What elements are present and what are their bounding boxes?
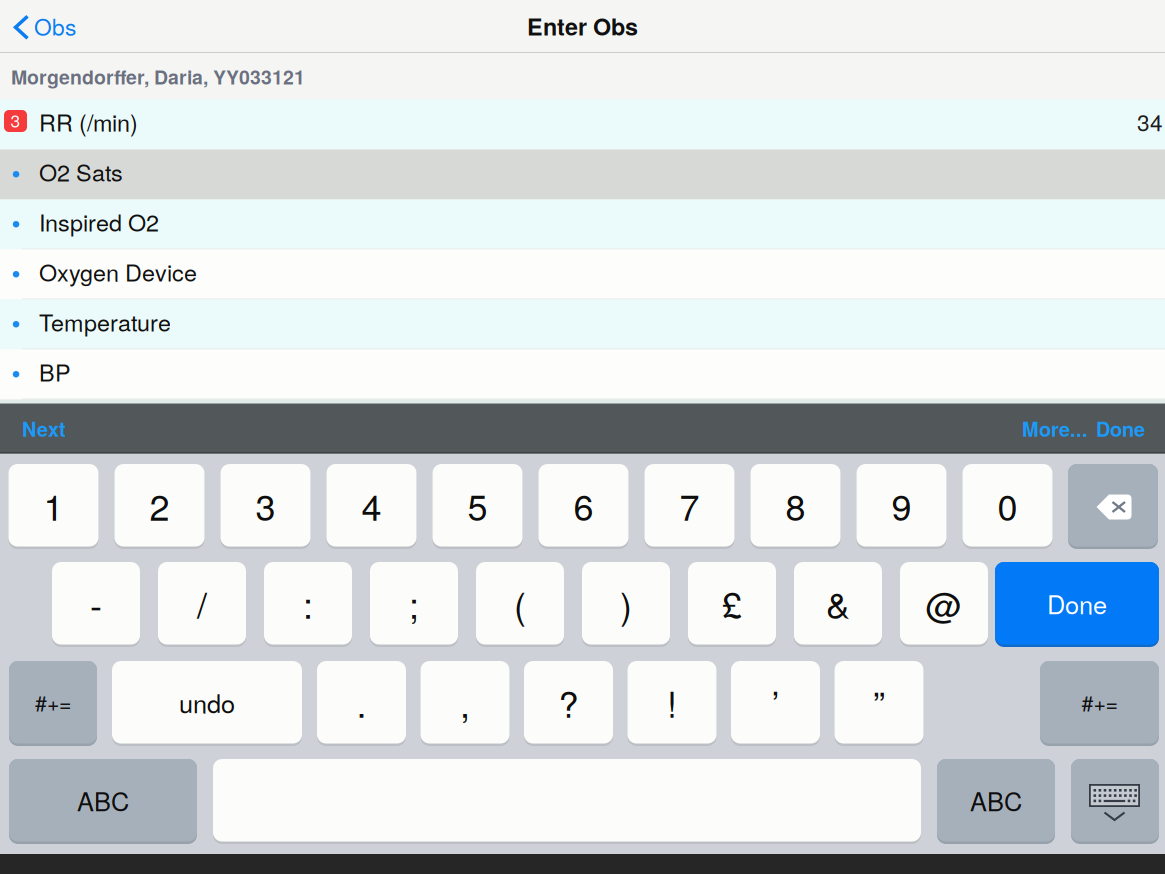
button[interactable]: 5 [432, 464, 522, 549]
staticText: Enter Obs [527, 9, 638, 43]
button[interactable]: 7 [644, 464, 734, 549]
button[interactable]: : [264, 562, 352, 647]
staticText: undo [179, 684, 235, 720]
button[interactable]: Oxygen Device [0, 249, 1165, 299]
staticText: #+= [35, 687, 71, 717]
button[interactable]: O2 Sats [0, 149, 1165, 199]
staticText: 5 [467, 479, 487, 531]
staticText: Oxygen Device [39, 255, 197, 288]
staticText: ABC [77, 782, 129, 818]
staticText: O2 Sats [39, 155, 123, 188]
button[interactable]: undo [112, 661, 302, 746]
staticText: . [356, 676, 366, 728]
button[interactable]: ; [370, 562, 458, 647]
staticText: Obs [34, 10, 76, 42]
button[interactable]: Delete [1068, 464, 1158, 549]
staticText: ; [409, 577, 419, 629]
staticText: Done [1096, 414, 1145, 443]
button[interactable]: 8 [750, 464, 840, 549]
staticText: : [303, 577, 313, 629]
button[interactable]: , [420, 661, 509, 746]
staticText: Done [1047, 585, 1107, 621]
staticText: , [460, 676, 470, 728]
staticText: £ [722, 577, 742, 629]
button[interactable]: More... [1022, 403, 1092, 453]
staticText: BP [39, 355, 71, 388]
staticText: 6 [573, 479, 593, 531]
button[interactable]: 9 [856, 464, 946, 549]
staticText: Temperature [39, 305, 171, 338]
staticText: RR (/min) [39, 105, 138, 138]
button[interactable]: Inspired O2 [0, 199, 1165, 249]
button[interactable]: #+= [9, 661, 97, 746]
staticText: Next [22, 414, 66, 443]
staticText: 3 [10, 108, 20, 132]
button[interactable]: 2 [114, 464, 204, 549]
button[interactable]: Hide keyboard [1071, 759, 1159, 844]
staticText: Inspired O2 [39, 205, 159, 238]
staticText: - [90, 577, 102, 629]
button[interactable]: #+= [1040, 661, 1159, 746]
staticText: Morgendorffer, Daria, YY033121 [11, 63, 305, 90]
button[interactable]: Next [22, 403, 92, 453]
button[interactable]: Temperature [0, 299, 1165, 349]
staticText: 0 [997, 479, 1017, 531]
button[interactable]: ( [476, 562, 564, 647]
staticText: ( [514, 577, 526, 629]
button[interactable]: ? [524, 661, 613, 746]
button[interactable]: 4 [326, 464, 416, 549]
staticText: ’ [771, 676, 779, 728]
staticText: 7 [679, 479, 699, 531]
button[interactable]: Done [995, 562, 1159, 647]
staticText: #+= [1081, 687, 1117, 717]
button[interactable]: & [794, 562, 882, 647]
button[interactable]: 0 [962, 464, 1052, 549]
staticText: More... [1022, 414, 1088, 443]
button[interactable]: Done [1096, 403, 1156, 453]
staticText: ! [667, 676, 677, 728]
staticText: 4 [361, 479, 381, 531]
button[interactable]: 6 [538, 464, 628, 549]
staticText: @ [925, 577, 962, 629]
button[interactable]: £ [688, 562, 776, 647]
staticText: / [197, 577, 207, 629]
button[interactable]: ! [627, 661, 716, 746]
button[interactable]: BP [0, 349, 1165, 399]
staticText: ) [620, 577, 632, 629]
staticText: ABC [970, 782, 1022, 818]
staticText: 9 [891, 479, 911, 531]
button[interactable]: @ [900, 562, 988, 647]
button[interactable]: 3 [0, 99, 1165, 149]
button[interactable]: 3 [220, 464, 310, 549]
button[interactable]: ABC [937, 759, 1055, 844]
button[interactable]: ABC [9, 759, 197, 844]
button[interactable]: ’ [731, 661, 820, 746]
button[interactable]: - [52, 562, 140, 647]
staticText: ” [873, 676, 885, 728]
button[interactable]: ” [834, 661, 923, 746]
staticText: 2 [149, 479, 169, 531]
button[interactable]: ) [582, 562, 670, 647]
staticText: & [826, 577, 850, 629]
button[interactable]: 1 [8, 464, 98, 549]
staticText: 34 [1137, 105, 1163, 138]
staticText: ? [558, 676, 578, 728]
button[interactable]: space [213, 759, 921, 844]
staticText: 3 [255, 479, 275, 531]
staticText: 8 [785, 479, 805, 531]
button[interactable]: Back to Obs [0, 0, 86, 52]
button[interactable]: . [317, 661, 406, 746]
staticText: 1 [43, 479, 63, 531]
button[interactable]: / [158, 562, 246, 647]
